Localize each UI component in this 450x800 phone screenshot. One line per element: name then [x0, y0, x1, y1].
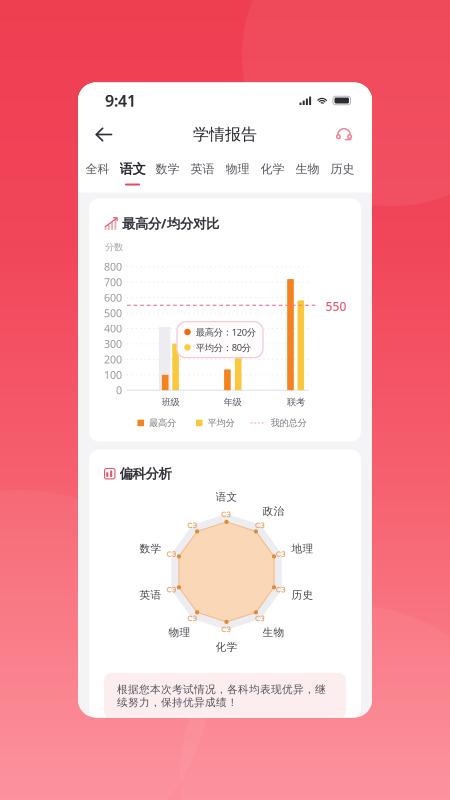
staticText: 班级 — [161, 396, 179, 408]
staticText: 根据您本次考试情况，各科均表现优异，继续努力，保持优异成绩！ — [117, 683, 326, 709]
staticText: 语文 — [119, 161, 145, 177]
staticText: 化学 — [215, 640, 237, 653]
staticText: 年级 — [223, 396, 241, 408]
staticText: 英语 — [139, 588, 161, 602]
staticText: 全科 — [85, 162, 109, 176]
staticText: 分数 — [105, 241, 123, 253]
staticText: 数学 — [139, 542, 161, 555]
button[interactable]: 英语 — [185, 151, 220, 192]
staticText: 化学 — [260, 162, 284, 176]
staticText: 700 — [104, 275, 122, 289]
staticText: 最高分 — [149, 417, 176, 429]
staticText: 最高分/均分对比 — [122, 214, 219, 232]
staticText: 550 — [325, 298, 346, 314]
staticText: 400 — [104, 321, 122, 336]
button[interactable]: Customer service — [327, 117, 361, 151]
button[interactable]: 全科 — [80, 151, 115, 192]
staticText: 平均分：80分 — [196, 341, 251, 354]
staticText: 300 — [104, 337, 122, 351]
staticText: 800 — [104, 260, 122, 274]
button[interactable]: 生物 — [290, 151, 325, 192]
staticText: 地理 — [292, 542, 314, 555]
button[interactable]: 数学 — [150, 151, 185, 192]
staticText: 政治 — [262, 505, 284, 518]
staticText: 9:41 — [105, 90, 136, 111]
staticText: 生物 — [295, 162, 319, 176]
staticText: 英语 — [190, 162, 214, 176]
staticText: 200 — [104, 352, 122, 366]
staticText: 平均分 — [207, 417, 234, 429]
staticText: 历史 — [292, 588, 314, 602]
staticText: 物理 — [225, 162, 249, 176]
staticText: 学情报告 — [193, 125, 257, 144]
staticText: 最高分：120分 — [196, 326, 256, 338]
staticText: 100 — [104, 368, 122, 382]
button[interactable]: Back — [87, 117, 121, 151]
button[interactable]: 语文 — [115, 151, 150, 192]
staticText: 0 — [116, 383, 122, 397]
button[interactable]: 物理 — [220, 151, 255, 192]
staticText: 数学 — [155, 162, 179, 176]
staticText: 偏科分析 — [119, 465, 171, 482]
staticText: 生物 — [262, 626, 284, 639]
staticText: 600 — [104, 290, 122, 305]
staticText: 语文 — [215, 490, 237, 503]
button[interactable]: 化学 — [255, 151, 290, 192]
staticText: 历史 — [330, 162, 354, 176]
staticText: 我的总分 — [270, 417, 306, 429]
staticText: 500 — [104, 306, 122, 320]
button[interactable]: 历史 — [325, 151, 360, 192]
staticText: 联考 — [287, 396, 305, 408]
staticText: 物理 — [168, 626, 190, 639]
